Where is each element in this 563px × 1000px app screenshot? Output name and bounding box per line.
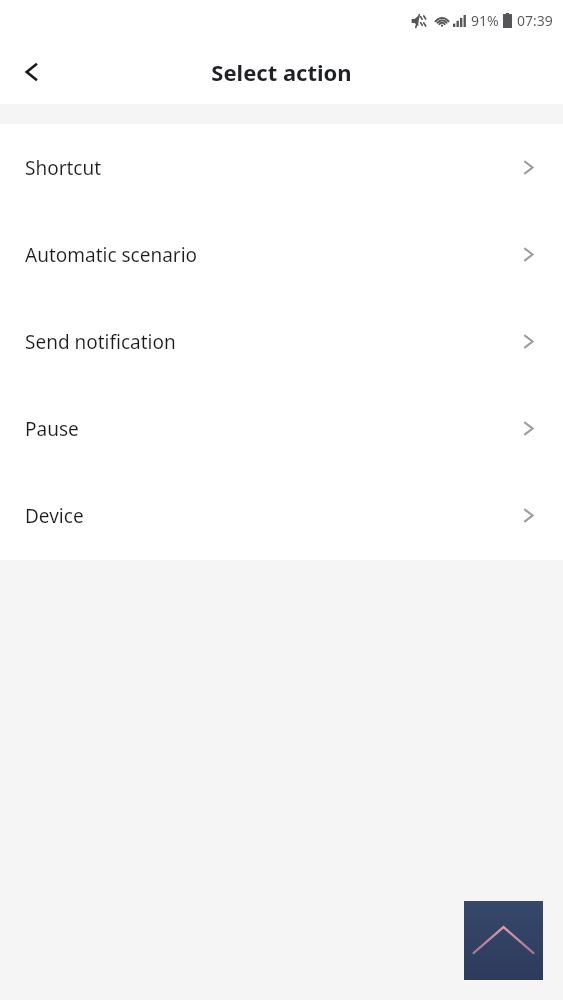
button[interactable]: Back (0, 40, 64, 104)
staticText: Device (25, 503, 84, 529)
button[interactable]: Device (0, 472, 563, 559)
staticText: Pause (25, 416, 79, 442)
button[interactable]: Pause (0, 385, 563, 472)
button[interactable]: Automatic scenario (0, 211, 563, 298)
staticText: Shortcut (25, 155, 102, 181)
staticText: Select action (211, 57, 352, 87)
button[interactable]: Send notification (0, 298, 563, 385)
staticText: Automatic scenario (25, 242, 198, 268)
staticText: 07:39 (517, 11, 553, 30)
staticText: Send notification (25, 329, 176, 355)
button[interactable]: Expand (464, 901, 543, 980)
staticText: 91% (471, 11, 499, 30)
button[interactable]: Shortcut (0, 124, 563, 211)
